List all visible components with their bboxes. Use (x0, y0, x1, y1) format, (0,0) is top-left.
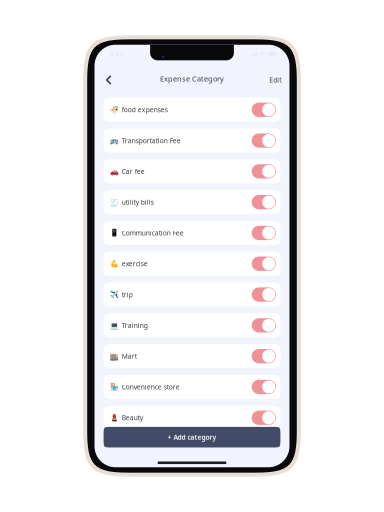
staticText: 🏬 (110, 352, 119, 360)
staticText: 🏪 (110, 383, 119, 391)
staticText: ✈️ (110, 291, 119, 298)
staticText: 🍜 (110, 106, 119, 114)
button[interactable]: Back (99, 69, 119, 89)
button[interactable]: 🏬 (103, 344, 280, 368)
button[interactable]: 📱 (103, 221, 280, 245)
staticText: 💻 (110, 321, 119, 329)
button[interactable]: 🚗 (103, 159, 280, 183)
button[interactable]: 🧾 (103, 190, 280, 214)
staticText: 💪 (110, 260, 119, 268)
button[interactable]: 💪 (103, 252, 280, 276)
button[interactable]: 💻 (103, 313, 280, 337)
staticText: food expenses (122, 105, 168, 114)
button[interactable]: 🏪 (103, 375, 280, 399)
staticText: Transportation Fee (122, 136, 181, 145)
staticText: Edit (269, 75, 281, 84)
staticText: 💄 (110, 414, 119, 422)
staticText: Training (122, 321, 148, 330)
button[interactable]: + Add category (104, 427, 280, 447)
staticText: 9:41 (109, 50, 123, 58)
button[interactable]: 💄 (103, 406, 280, 430)
staticText: + Add category (167, 433, 216, 442)
staticText: Convenience store (122, 382, 180, 391)
button[interactable]: 🚌 (103, 129, 280, 153)
staticText: 📱 (110, 229, 119, 237)
button[interactable]: ✈️ (103, 283, 280, 307)
button[interactable]: Edit (265, 69, 285, 89)
staticText: 🚌 (110, 137, 119, 144)
staticText: 🧾 (110, 198, 119, 206)
button[interactable]: 🍜 (103, 98, 280, 122)
staticText: Mart (122, 352, 137, 361)
staticText: Beauty (122, 413, 143, 422)
staticText: Communication Fee (122, 228, 184, 237)
staticText: utility bills (122, 198, 154, 207)
staticText: 🚗 (110, 167, 119, 175)
staticText: exercise (122, 259, 148, 268)
staticText: Car fee (122, 167, 145, 176)
staticText: Expense Category (160, 74, 224, 84)
staticText: trip (122, 290, 133, 299)
